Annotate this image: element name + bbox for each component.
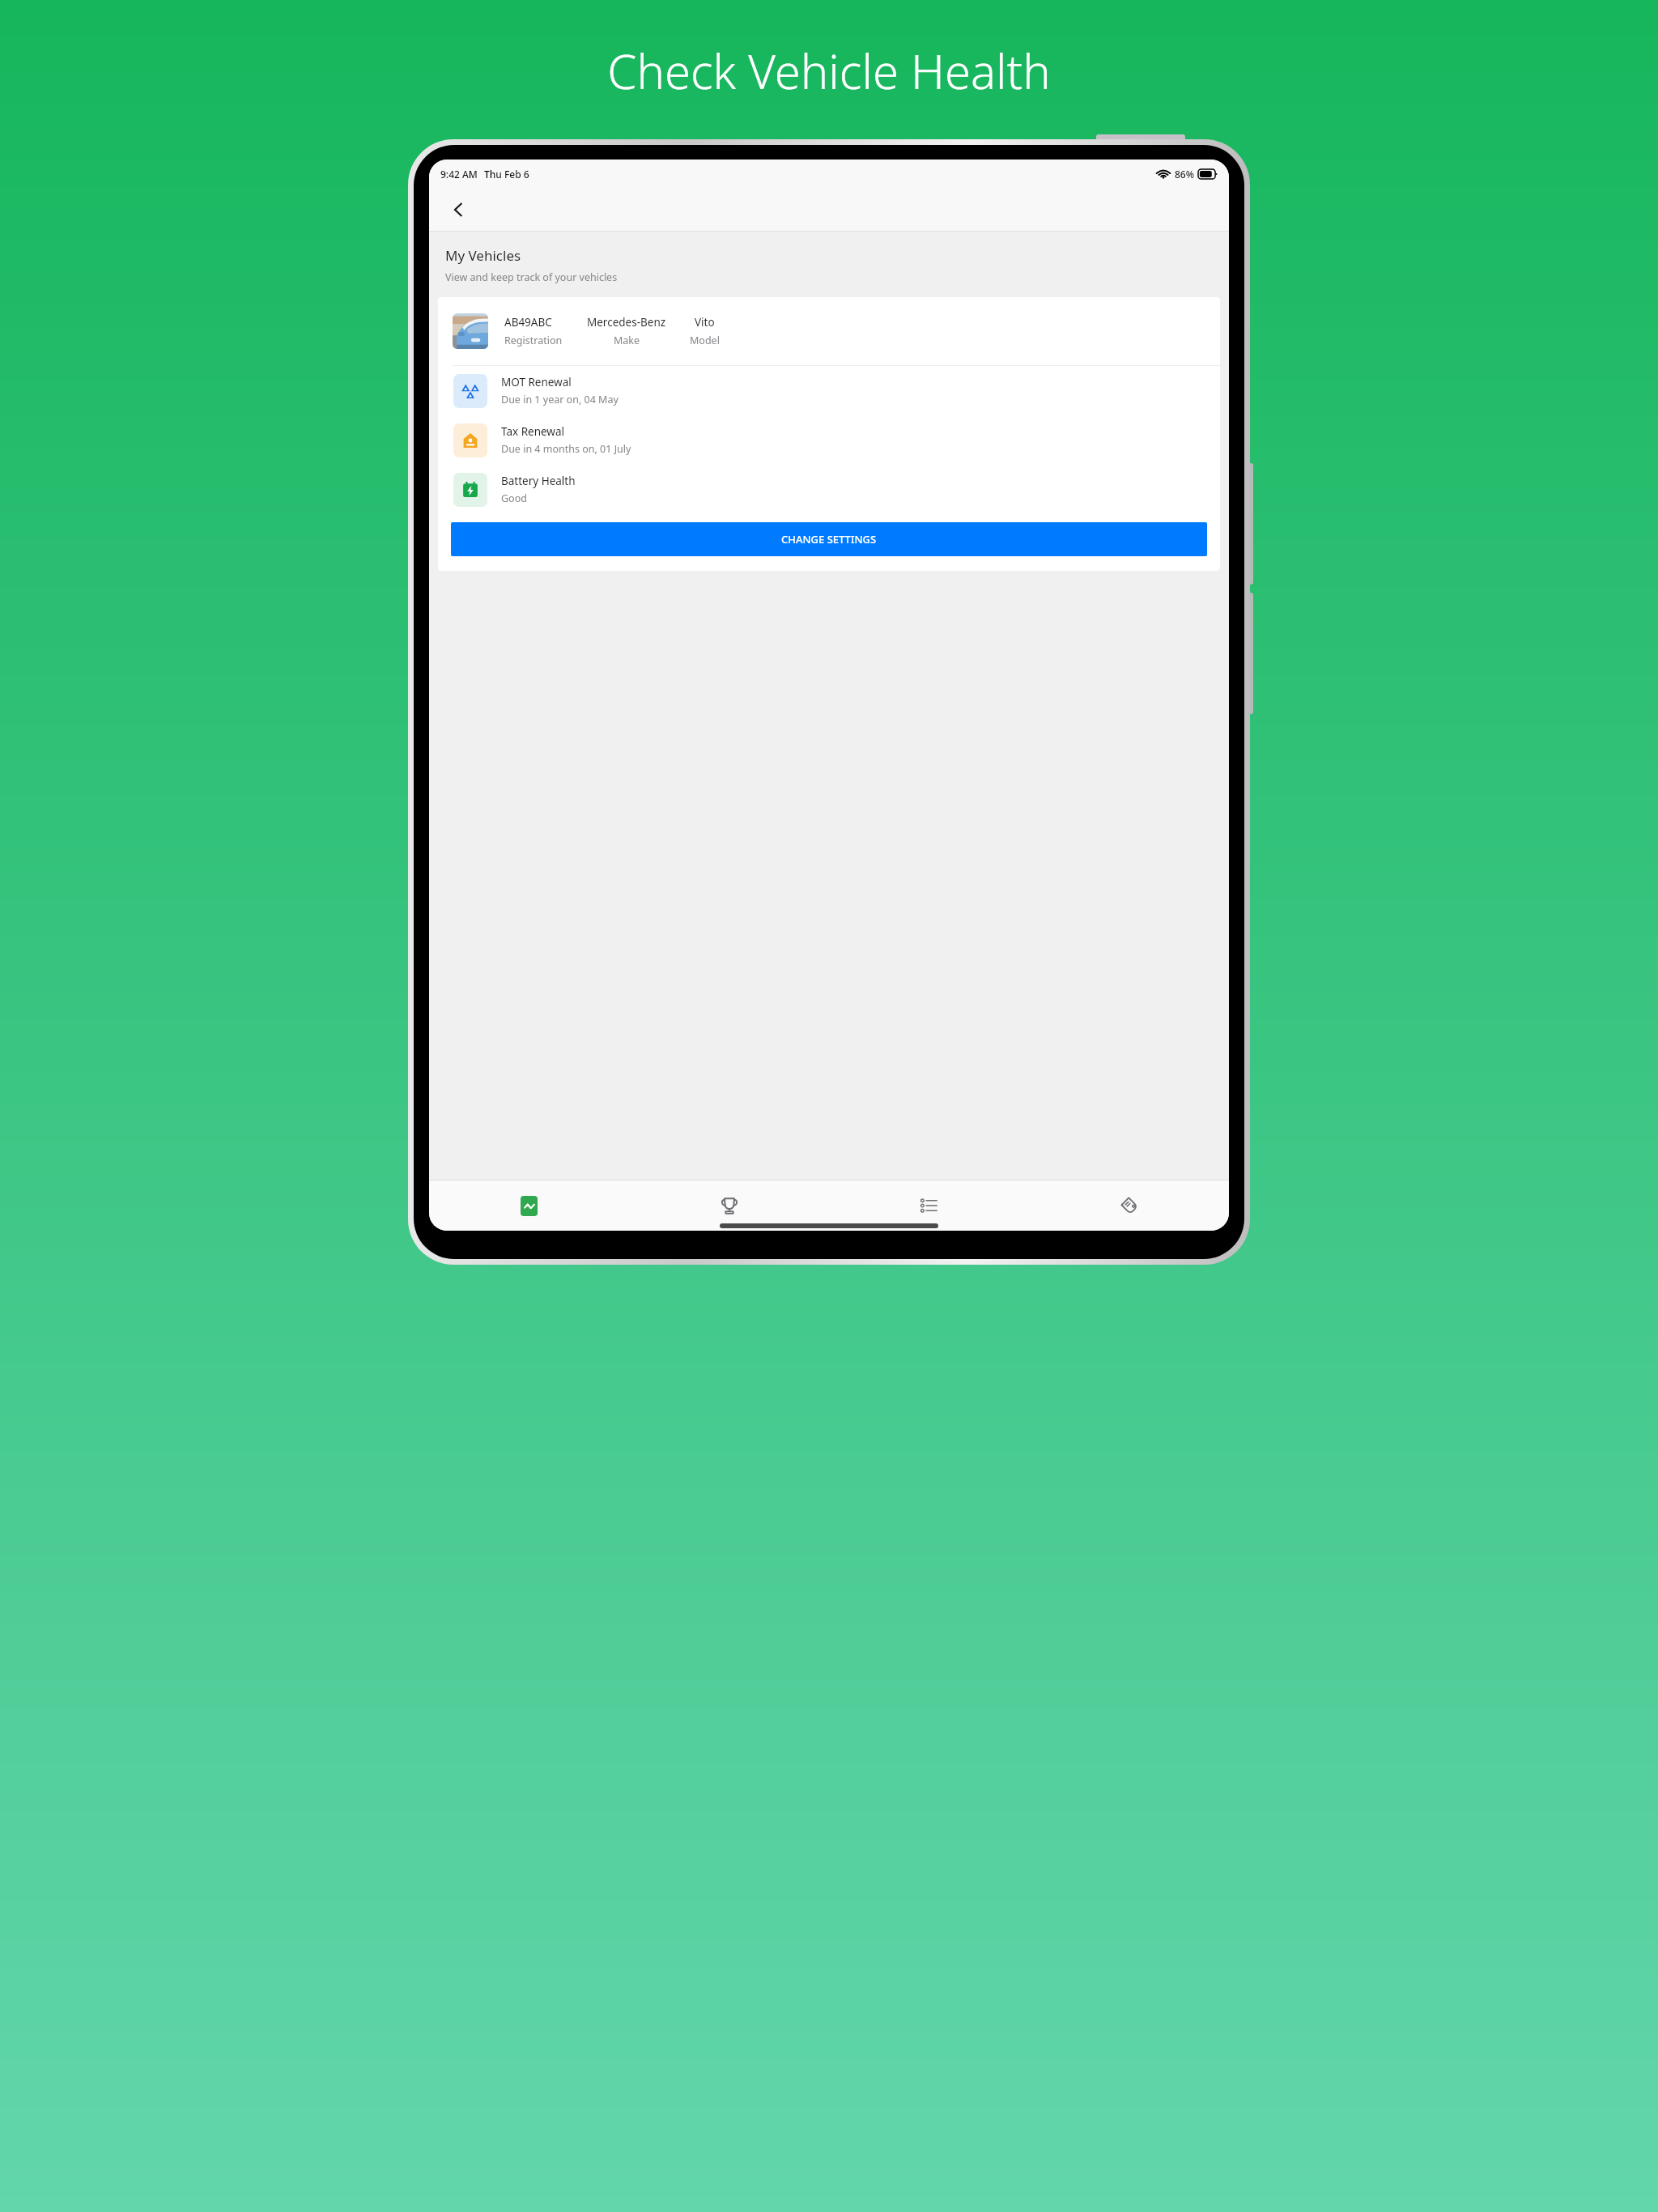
staticText: View and keep track of your vehicles bbox=[445, 270, 618, 284]
staticText: Model bbox=[690, 334, 720, 347]
button[interactable]: Tax Renewal bbox=[438, 415, 1220, 465]
staticText: Check Vehicle Health bbox=[607, 39, 1051, 103]
staticText: 86% bbox=[1175, 168, 1194, 181]
staticText: Thu Feb 6 bbox=[484, 168, 529, 181]
button[interactable]: Battery Health bbox=[438, 465, 1220, 514]
staticText: Mercedes-Benz bbox=[587, 315, 666, 330]
staticText: Make bbox=[614, 334, 640, 347]
staticText: AB49ABC bbox=[504, 315, 552, 330]
staticText: Battery Health bbox=[501, 474, 576, 488]
button[interactable]: AB49ABC bbox=[438, 297, 1220, 365]
staticText: My Vehicles bbox=[445, 246, 521, 265]
staticText: CHANGE SETTINGS bbox=[781, 532, 877, 547]
staticText: Vito bbox=[695, 315, 715, 330]
staticText: MOT Renewal bbox=[501, 375, 572, 389]
button[interactable]: MOT Renewal bbox=[438, 366, 1220, 415]
button[interactable]: Health bbox=[429, 1180, 629, 1231]
button[interactable]: Offers bbox=[1029, 1180, 1229, 1231]
staticText: Registration bbox=[504, 334, 563, 347]
staticText: Due in 1 year on, 04 May bbox=[501, 393, 619, 406]
button[interactable]: Rewards bbox=[629, 1180, 829, 1231]
button[interactable]: Back bbox=[442, 194, 474, 226]
button[interactable]: List bbox=[829, 1180, 1029, 1231]
button[interactable]: CHANGE SETTINGS bbox=[451, 522, 1207, 556]
staticText: Tax Renewal bbox=[501, 424, 565, 439]
staticText: 9:42 AM bbox=[440, 168, 478, 181]
staticText: Good bbox=[501, 491, 527, 505]
staticText: Due in 4 months on, 01 July bbox=[501, 442, 631, 456]
